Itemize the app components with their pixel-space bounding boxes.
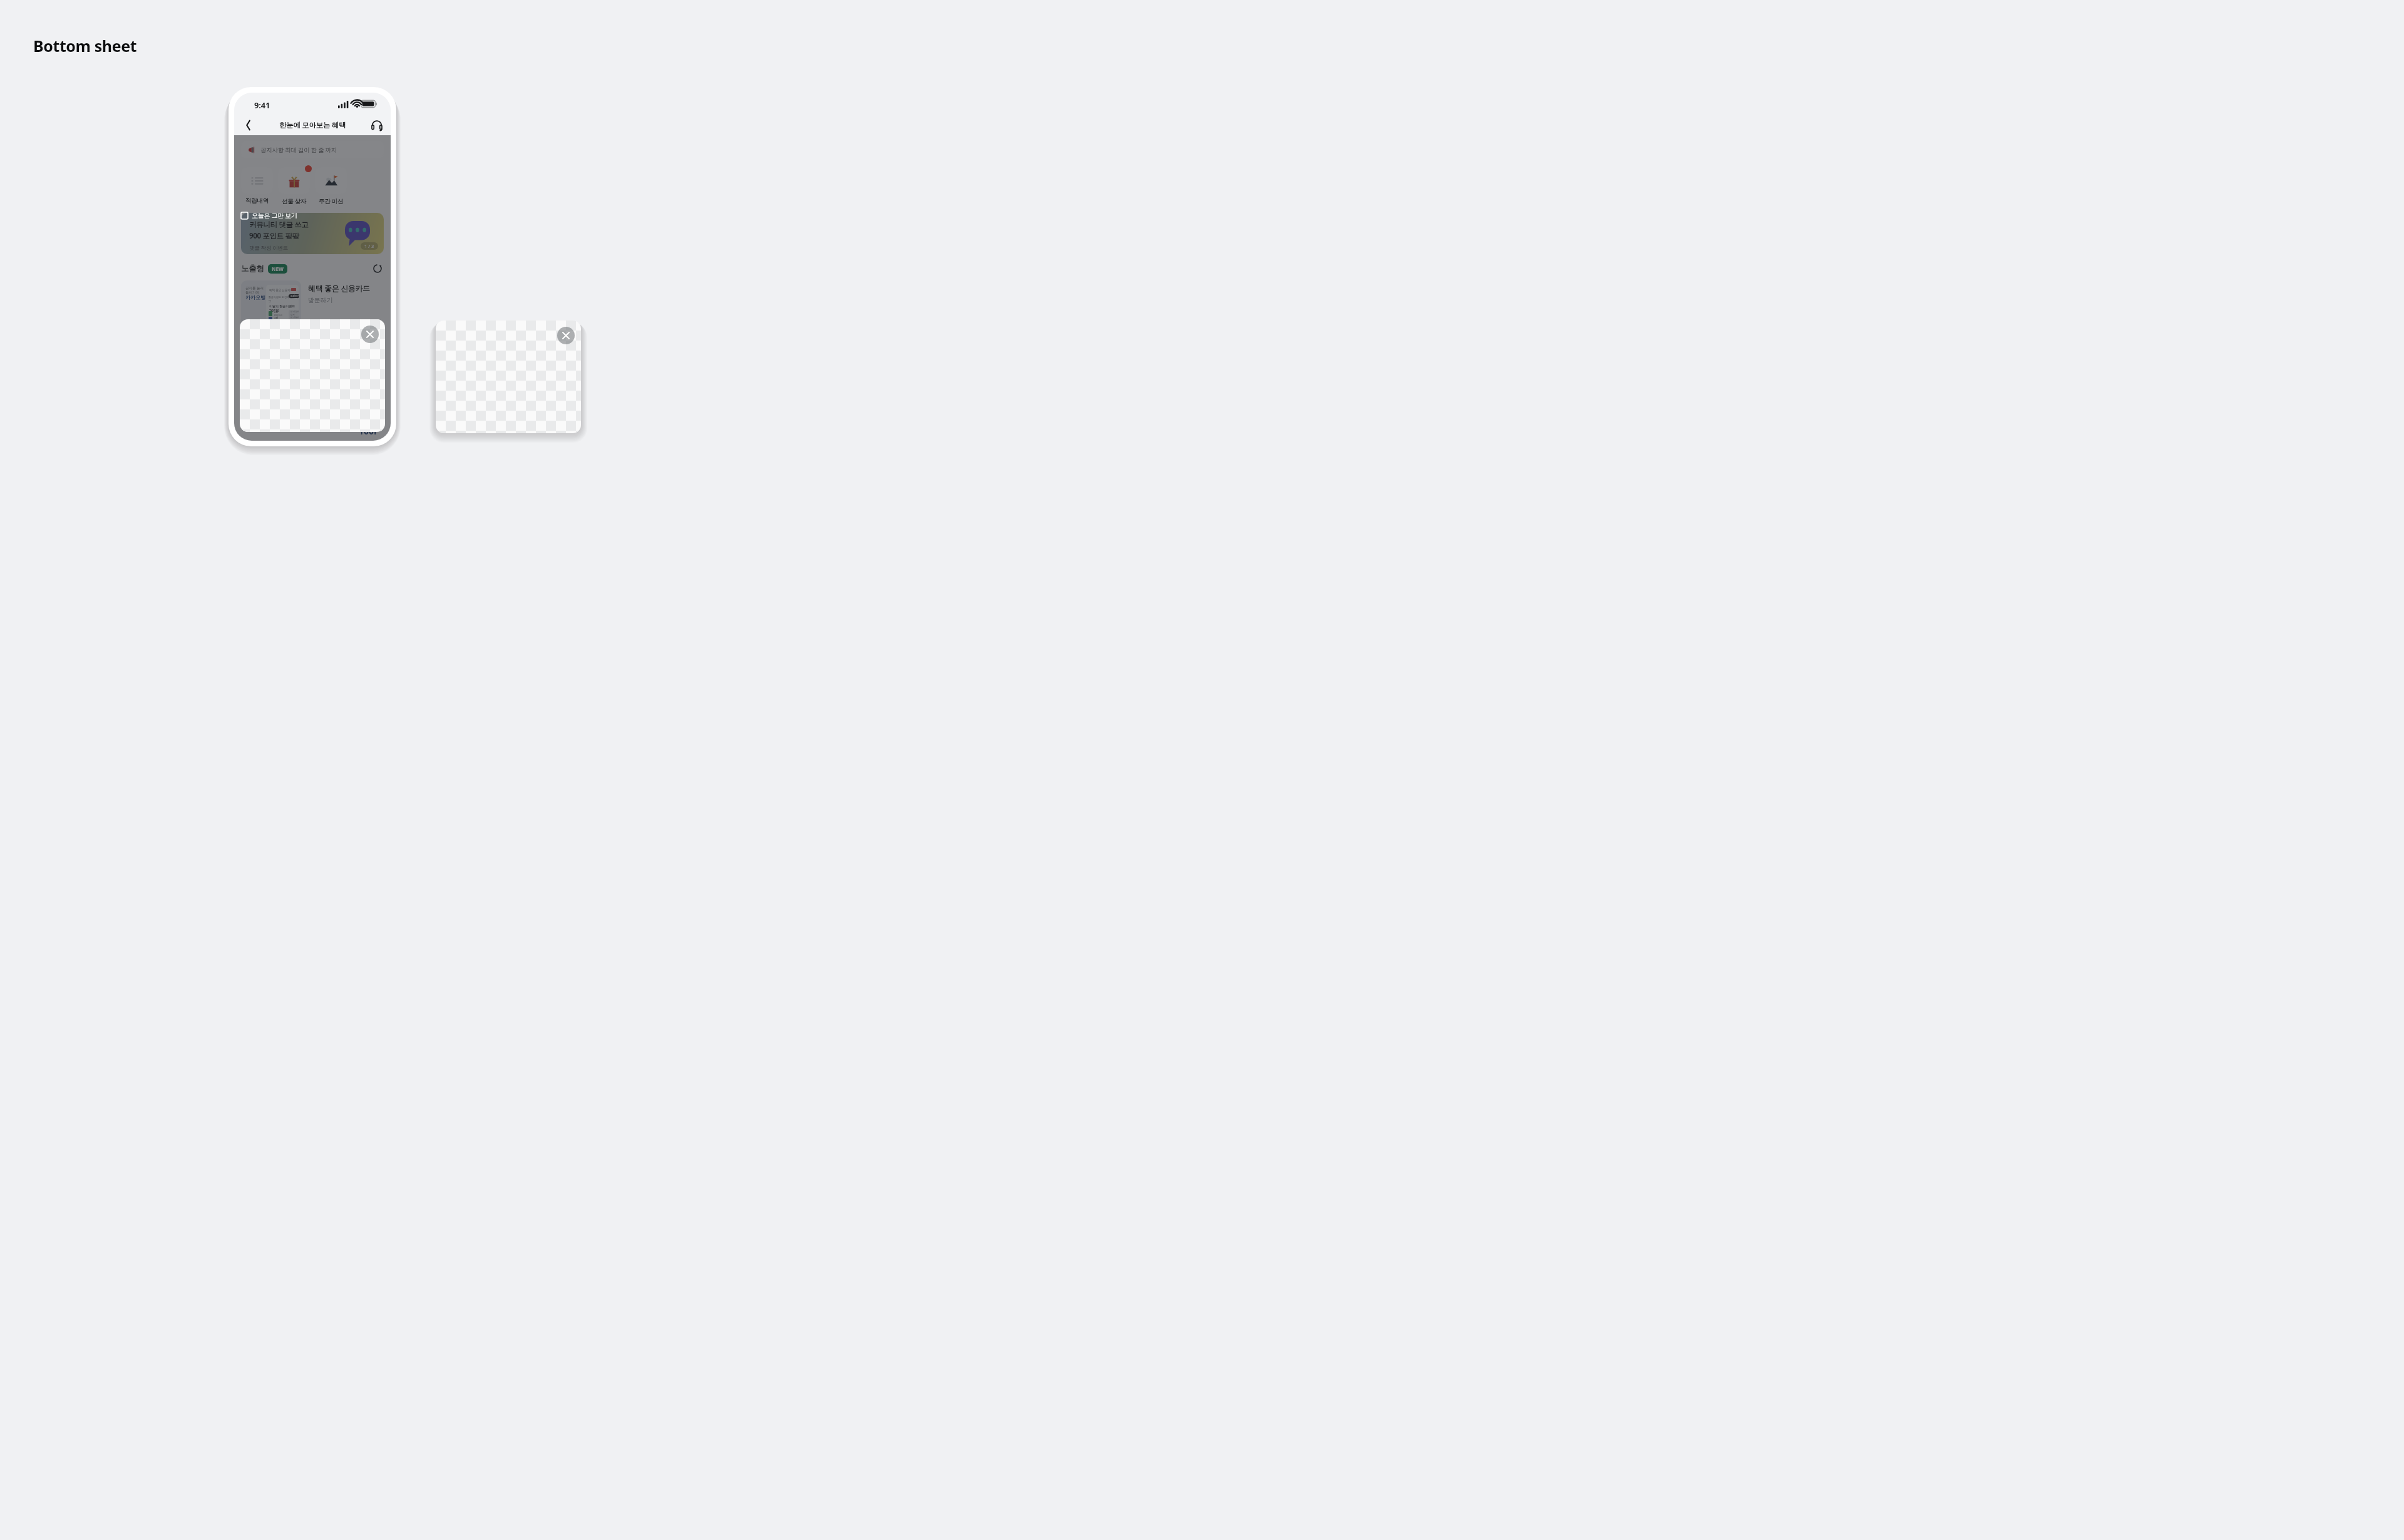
staticText: 카카오뱅크: [245, 294, 270, 300]
staticText: OO카드: [274, 314, 283, 317]
button[interactable]: 주간 미션: [315, 167, 347, 205]
button[interactable]: 공지사항 최대 길이 한 줄 까지: [241, 141, 384, 158]
staticText: 조회하기: [290, 295, 299, 297]
staticText: 현금이벤트 조건에 맞는 카드만: [269, 295, 299, 302]
button[interactable]: Close: [436, 321, 581, 433]
staticText: 3위: [274, 316, 278, 319]
staticText: 2위: [274, 311, 278, 314]
staticText: Bottom sheet: [33, 35, 137, 56]
button[interactable]: Close: [361, 326, 379, 343]
staticText: NEW: [272, 265, 284, 272]
staticText: 댓글 작성 이벤트: [249, 244, 289, 252]
staticText: 주간 미션: [319, 197, 343, 205]
staticText: 혜택 좋은 신용카드: [269, 288, 294, 292]
button[interactable]: 적립내역: [241, 167, 273, 205]
button[interactable]: Refresh: [371, 262, 384, 275]
button[interactable]: 커뮤니티 댓글 쓰고: [241, 213, 384, 254]
staticText: 커뮤니티 댓글 쓰고: [249, 220, 309, 230]
staticText: 방문하기: [308, 296, 333, 304]
staticText: 적립내역: [245, 197, 269, 205]
staticText: 100P: [359, 425, 379, 437]
staticText: 공지를 눌러 들어가게: [245, 285, 264, 295]
staticText: OO카드: [274, 319, 283, 321]
button[interactable]: 공지를 눌러 들어가게: [241, 280, 301, 326]
button[interactable]: Customer support: [369, 118, 384, 133]
staticText: 이달의 현금이벤트 TOP10: [269, 304, 299, 313]
staticText: 혜택 좋은 신용카드: [308, 283, 370, 293]
staticText: 9:41: [254, 100, 270, 111]
button[interactable]: 선물 상자: [278, 167, 310, 205]
button[interactable]: Close: [240, 319, 385, 432]
staticText: 한눈에 모아보는 혜택: [279, 120, 346, 130]
button[interactable]: Back: [239, 117, 255, 133]
staticText: 선물 상자: [282, 197, 306, 205]
button[interactable]: 오늘은 그만 보기: [241, 211, 297, 220]
staticText: 오늘은 그만 보기: [252, 211, 297, 220]
staticText: 공지사항 최대 길이 한 줄 까지: [260, 146, 337, 154]
staticText: 1 / 3: [364, 243, 374, 249]
staticText: 내 지갑에 담기: [290, 316, 299, 321]
staticText: 노출형: [241, 264, 264, 274]
button[interactable]: Close: [557, 327, 575, 344]
staticText: 900 포인트 팡팡: [249, 231, 299, 241]
staticText: 내 지갑에 담기: [290, 311, 299, 316]
